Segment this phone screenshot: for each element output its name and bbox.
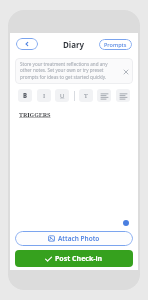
staticText: TRIGGERS	[19, 111, 51, 119]
staticText: Diary	[63, 39, 85, 50]
staticText: I	[43, 92, 46, 100]
staticText: Attach Photo	[58, 234, 100, 243]
staticText: T	[84, 92, 88, 100]
button[interactable]: I	[37, 89, 51, 102]
staticText: B	[23, 92, 28, 100]
button[interactable]: U	[55, 89, 69, 102]
button[interactable]: B	[18, 89, 32, 102]
staticText: Post Check-in	[55, 254, 103, 264]
button[interactable]: Dismiss	[122, 68, 129, 75]
button[interactable]: TRIGGERS	[15, 107, 133, 231]
staticText: Prompts	[104, 41, 127, 48]
button[interactable]: Back	[16, 38, 38, 50]
staticText: U	[60, 92, 65, 100]
button[interactable]: Prompts	[99, 39, 132, 50]
button[interactable]	[116, 89, 130, 102]
button[interactable]: T	[79, 89, 93, 102]
button[interactable]: Post Check-in	[15, 250, 133, 267]
button[interactable]: Attach Photo	[15, 231, 133, 246]
button[interactable]	[97, 89, 111, 102]
staticText: Store your treatment reflections and any…	[20, 61, 119, 81]
